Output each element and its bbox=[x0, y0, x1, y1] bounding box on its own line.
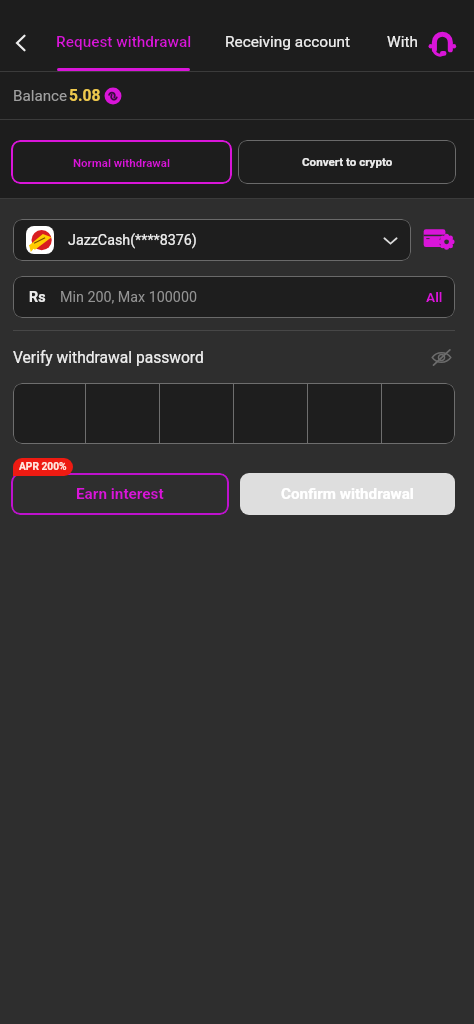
staticText: Withdrawal record bbox=[387, 33, 418, 51]
staticText: Verify withdrawal password bbox=[13, 349, 204, 367]
staticText: Balance bbox=[13, 87, 68, 105]
staticText: Min 200, Max 100000 bbox=[60, 289, 197, 306]
button[interactable]: Password digit 3 bbox=[160, 383, 233, 444]
button[interactable]: Earn interest bbox=[11, 473, 229, 515]
button[interactable]: Normal withdrawal bbox=[11, 140, 232, 184]
staticText: Earn interest bbox=[76, 485, 164, 503]
button[interactable]: Password digit 4 bbox=[234, 383, 307, 444]
staticText: Confirm withdrawal bbox=[281, 485, 414, 503]
button[interactable]: Manage payment methods bbox=[421, 221, 456, 256]
button[interactable]: Password digit 1 bbox=[13, 383, 85, 444]
button[interactable]: Rs bbox=[13, 276, 455, 318]
button[interactable]: Back bbox=[0, 21, 42, 65]
staticText: 5.08 bbox=[69, 87, 101, 105]
button[interactable]: Receiving account bbox=[214, 22, 362, 58]
button[interactable]: Withdrawal record bbox=[374, 22, 418, 58]
button[interactable]: Convert to crypto bbox=[238, 140, 456, 184]
staticText: JazzCash(****8376) bbox=[68, 232, 197, 249]
button[interactable]: Refresh balance bbox=[103, 86, 122, 105]
staticText: Request withdrawal bbox=[56, 33, 192, 51]
staticText: Convert to crypto bbox=[302, 155, 393, 169]
button[interactable]: All bbox=[426, 289, 443, 305]
staticText: All bbox=[426, 289, 443, 305]
button[interactable]: Show password bbox=[428, 344, 455, 371]
button[interactable]: JazzCash(****8376) bbox=[13, 219, 411, 261]
button[interactable]: Password digit 6 bbox=[382, 383, 455, 444]
button[interactable]: Customer support bbox=[419, 20, 465, 66]
staticText: APR 200% bbox=[19, 461, 67, 473]
button[interactable]: Confirm withdrawal bbox=[240, 473, 455, 515]
staticText: Receiving account bbox=[225, 33, 351, 51]
staticText: Rs bbox=[29, 289, 46, 306]
button[interactable]: Request withdrawal bbox=[45, 22, 202, 71]
button[interactable]: Password digit 5 bbox=[308, 383, 381, 444]
button[interactable]: Password digit 2 bbox=[86, 383, 159, 444]
staticText: Normal withdrawal bbox=[73, 156, 170, 169]
